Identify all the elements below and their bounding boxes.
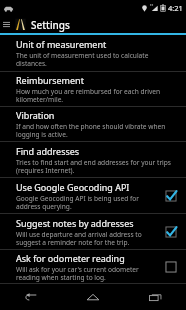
staticText: Tries to find start and end addresses fo… <box>16 158 180 175</box>
staticText: Suggest notes by addresses <box>16 217 134 229</box>
button[interactable]: Reimbursement <box>0 72 186 106</box>
staticText: Use Google Geocoding API <box>16 181 130 193</box>
button[interactable]: Suggest notes by addresses <box>0 214 186 249</box>
button[interactable]: Vibration <box>0 107 186 141</box>
button[interactable]: App icon, up <box>13 17 28 32</box>
staticText: How much you are reimbursed for each dri… <box>16 87 180 104</box>
staticText: If and how often the phone should vibrat… <box>16 122 180 139</box>
staticText: Google Geocoding API is being used for a… <box>16 194 150 211</box>
staticText: Unit of measurement <box>16 38 107 50</box>
button[interactable]: Unchecked <box>156 250 186 283</box>
button[interactable]: Recent apps <box>124 284 186 310</box>
staticText: Reimbursement <box>16 74 84 86</box>
staticText: Will ask for your car's current odometer… <box>16 265 150 282</box>
button[interactable]: Unit of measurement <box>0 35 186 71</box>
staticText: Vibration <box>16 109 55 121</box>
button[interactable]: Home <box>62 284 124 310</box>
staticText: Find addresses <box>16 145 80 157</box>
button[interactable]: Use Google Geocoding API <box>0 178 186 213</box>
staticText: Will use departure and arrival address t… <box>16 230 150 247</box>
button[interactable]: Back <box>0 284 62 310</box>
button[interactable]: Ask for odometer reading <box>0 250 186 283</box>
staticText: The unit of measurement used to calculat… <box>16 51 180 68</box>
button[interactable]: Checked <box>156 214 186 249</box>
staticText: Ask for odometer reading <box>16 252 125 264</box>
staticText: Settings <box>31 18 70 32</box>
button[interactable]: Find addresses <box>0 142 186 177</box>
button[interactable]: Navigation drawer <box>2 20 11 29</box>
staticText: 4:21 <box>168 3 183 13</box>
button[interactable]: Checked <box>156 178 186 213</box>
